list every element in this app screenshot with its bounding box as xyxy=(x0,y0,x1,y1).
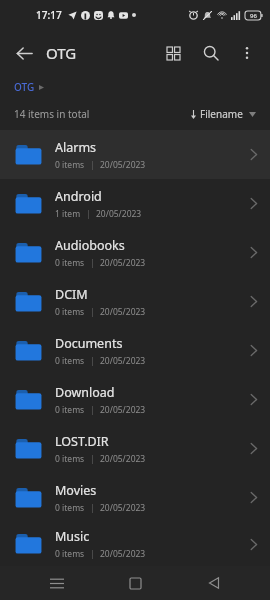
button[interactable]: DCIM xyxy=(0,277,270,326)
staticText: Documents xyxy=(55,335,123,352)
staticText: | xyxy=(90,355,95,367)
staticText: | xyxy=(90,548,95,560)
staticText: Alarms xyxy=(55,139,97,156)
staticText: 20/05/2023 xyxy=(100,548,146,560)
staticText: 1 item xyxy=(55,208,81,220)
staticText: OTG xyxy=(46,43,77,63)
button[interactable]: Recent apps xyxy=(35,566,79,600)
button[interactable]: Filename xyxy=(188,105,258,123)
staticText: | xyxy=(90,159,95,171)
staticText: 20/05/2023 xyxy=(100,355,146,367)
staticText: 14 items in total xyxy=(14,107,90,121)
button[interactable]: Grid view xyxy=(156,36,190,70)
button[interactable]: Home xyxy=(113,566,157,600)
button[interactable]: Audiobooks xyxy=(0,228,270,277)
staticText: 0 items xyxy=(55,306,85,318)
staticText: Download xyxy=(55,384,115,401)
button[interactable]: Documents xyxy=(0,326,270,375)
staticText: 0 items xyxy=(55,355,85,367)
staticText: 0 items xyxy=(55,159,85,171)
staticText: DCIM xyxy=(55,286,88,303)
staticText: 20/05/2023 xyxy=(100,159,146,171)
staticText: OTG xyxy=(14,80,35,94)
staticText: | xyxy=(86,208,91,220)
staticText: LOST.DIR xyxy=(55,433,109,450)
staticText: Filename xyxy=(200,107,243,121)
button[interactable]: Android xyxy=(0,179,270,228)
button[interactable]: OTG xyxy=(14,80,44,94)
staticText: 20/05/2023 xyxy=(100,502,146,514)
button[interactable]: Music xyxy=(0,522,270,566)
staticText: | xyxy=(90,453,95,465)
button[interactable]: Back xyxy=(6,35,42,71)
button[interactable]: Movies xyxy=(0,473,270,522)
staticText: Movies xyxy=(55,482,97,499)
button[interactable]: Back xyxy=(192,566,236,600)
staticText: | xyxy=(90,306,95,318)
staticText: 0 items xyxy=(55,404,85,416)
staticText: Audiobooks xyxy=(55,237,125,254)
staticText: 0 items xyxy=(55,548,85,560)
staticText: 17:17 xyxy=(36,8,62,22)
button[interactable]: Download xyxy=(0,375,270,424)
staticText: Music xyxy=(55,528,90,545)
staticText: 20/05/2023 xyxy=(100,404,146,416)
button[interactable]: More options xyxy=(230,36,264,70)
staticText: | xyxy=(90,404,95,416)
staticText: 20/05/2023 xyxy=(100,306,146,318)
button[interactable]: Alarms xyxy=(0,130,270,179)
staticText: 20/05/2023 xyxy=(96,208,142,220)
button[interactable]: LOST.DIR xyxy=(0,424,270,473)
staticText: 20/05/2023 xyxy=(100,257,146,269)
staticText: Android xyxy=(55,188,102,205)
staticText: 0 items xyxy=(55,257,85,269)
staticText: 0 items xyxy=(55,502,85,514)
staticText: 20/05/2023 xyxy=(100,453,146,465)
staticText: | xyxy=(90,257,95,269)
staticText: 96 xyxy=(250,12,257,20)
staticText: | xyxy=(90,502,95,514)
button[interactable]: Search xyxy=(194,36,228,70)
staticText: 0 items xyxy=(55,453,85,465)
